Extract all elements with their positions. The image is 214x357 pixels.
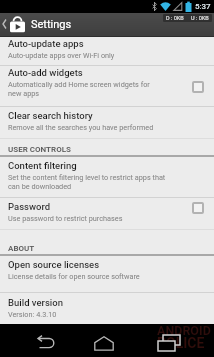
staticText: Remove all the searches you have perform… xyxy=(8,123,154,132)
button[interactable]: Auto-update apps xyxy=(0,37,214,65)
staticText: Use password to restrict purchases xyxy=(8,214,123,223)
staticText: U : 0KB xyxy=(191,15,209,21)
staticText: License details for open source software xyxy=(8,272,140,281)
staticText: Open source licenses xyxy=(8,259,100,270)
button[interactable] xyxy=(192,202,204,214)
button[interactable] xyxy=(192,81,204,93)
button[interactable]: Password xyxy=(0,198,214,229)
staticText: Settings xyxy=(31,18,72,31)
button[interactable]: Settings xyxy=(0,12,78,36)
button[interactable]: Content filtering xyxy=(0,157,214,197)
button[interactable]: Auto-add widgets xyxy=(0,66,214,106)
button[interactable] xyxy=(35,335,55,349)
staticText: Content filtering xyxy=(8,160,77,171)
staticText: Password xyxy=(8,201,51,212)
staticText: Clear search history xyxy=(8,110,93,121)
button[interactable]: Build version xyxy=(0,293,214,324)
staticText: 5:37 xyxy=(195,2,211,11)
staticText: Set the content filtering level to restr… xyxy=(8,173,166,191)
staticText: Version: 4.3.10 xyxy=(8,310,57,319)
staticText: Auto-add widgets xyxy=(8,67,83,78)
staticText: D : 0KB xyxy=(166,15,184,21)
staticText: Automatically add Home screen widgets fo… xyxy=(8,80,150,98)
staticText: Build version xyxy=(8,297,63,308)
staticText: ANDROID xyxy=(157,323,211,338)
staticText: Auto-update apps xyxy=(8,38,84,49)
staticText: ABOUT xyxy=(8,244,35,253)
staticText: Auto-update apps over Wi-Fi only xyxy=(8,51,115,60)
button[interactable]: Open source licenses xyxy=(0,256,214,292)
staticText: POLICE xyxy=(157,335,205,351)
button[interactable] xyxy=(94,336,114,351)
button[interactable] xyxy=(157,334,181,352)
button[interactable]: Clear search history xyxy=(0,107,214,138)
staticText: USER CONTROLS xyxy=(8,145,71,154)
